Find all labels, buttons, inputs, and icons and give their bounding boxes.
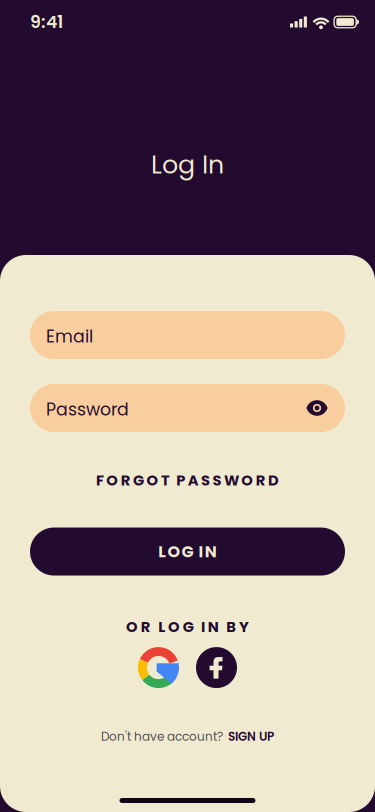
staticText: S (212, 470, 221, 490)
staticText: B (226, 616, 236, 637)
button[interactable]: Email (30, 311, 345, 359)
staticText: W (224, 470, 239, 490)
staticText: I (201, 616, 205, 637)
staticText: O (126, 616, 138, 637)
button[interactable]: Log in with Facebook (196, 647, 237, 688)
staticText: N (208, 616, 219, 637)
staticText: G (183, 616, 194, 637)
staticText: O (167, 540, 180, 563)
staticText: R (141, 616, 151, 637)
staticText: G (181, 540, 193, 563)
staticText: Don't have account? (101, 728, 223, 745)
staticText: S (201, 470, 210, 490)
button[interactable]: SIGN UP (228, 728, 274, 745)
button[interactable]: L (30, 527, 345, 575)
button[interactable]: Password (30, 384, 345, 432)
staticText: A (188, 470, 199, 490)
staticText: L (158, 616, 165, 637)
button[interactable]: F (86, 464, 289, 496)
staticText: R (256, 470, 266, 490)
staticText: O (168, 616, 180, 637)
staticText: Log In (151, 147, 224, 182)
staticText: T (161, 470, 170, 490)
staticText: R (121, 470, 131, 490)
staticText: SIGN UP (228, 728, 274, 745)
staticText: N (205, 540, 217, 563)
staticText: O (106, 470, 118, 490)
staticText: Password (46, 397, 129, 422)
staticText: I (199, 540, 204, 563)
staticText: O (146, 470, 158, 490)
button[interactable]: Log in with Google (138, 647, 179, 688)
staticText: 9:41 (30, 10, 63, 34)
staticText: Email (46, 324, 93, 349)
staticText: L (158, 540, 166, 563)
staticText: Y (239, 616, 249, 637)
staticText: D (268, 470, 279, 490)
staticText: G (133, 470, 144, 490)
staticText: F (96, 470, 104, 490)
staticText: P (176, 470, 185, 490)
staticText: O (241, 470, 253, 490)
